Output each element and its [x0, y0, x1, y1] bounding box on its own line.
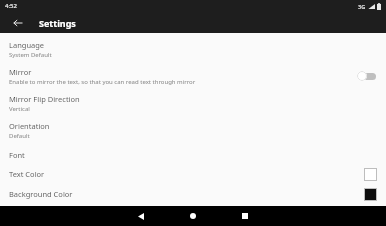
- button[interactable]: Text Color: [0, 165, 386, 183]
- button[interactable]: Recents: [232, 206, 258, 226]
- button[interactable]: Mirror Flip Direction: [0, 92, 386, 114]
- button[interactable]: Text Color: [363, 167, 377, 181]
- staticText: System Default: [9, 51, 52, 59]
- staticText: Mirror: [9, 67, 32, 77]
- staticText: Text Color: [9, 169, 45, 179]
- button[interactable]: Orientation: [0, 119, 386, 141]
- button[interactable]: Background Color: [0, 185, 386, 203]
- button[interactable]: Language: [0, 38, 386, 60]
- staticText: Font: [9, 150, 25, 160]
- staticText: Language: [9, 40, 45, 50]
- button[interactable]: Home: [180, 206, 206, 226]
- button[interactable]: Background Color: [363, 187, 377, 201]
- staticText: 3G: [358, 3, 366, 10]
- staticText: Orientation: [9, 121, 50, 131]
- staticText: Default: [9, 132, 30, 140]
- staticText: 4:52: [5, 2, 17, 10]
- button[interactable]: Mirror: [0, 65, 386, 87]
- button[interactable]: Font: [0, 146, 386, 163]
- button[interactable]: Back: [9, 14, 27, 32]
- staticText: Vertical: [9, 105, 30, 113]
- button[interactable]: Toggle mirror: [357, 69, 377, 83]
- staticText: Mirror Flip Direction: [9, 94, 80, 104]
- button[interactable]: Back: [128, 206, 154, 226]
- staticText: Background Color: [9, 189, 73, 199]
- staticText: Settings: [39, 17, 76, 29]
- staticText: Enable to mirror the text, so that you c…: [9, 78, 196, 86]
